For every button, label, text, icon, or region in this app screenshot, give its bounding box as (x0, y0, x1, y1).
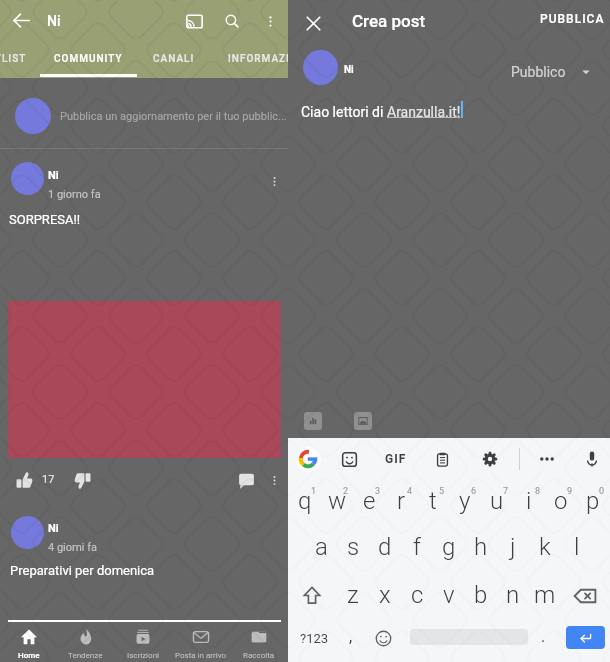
button[interactable]: x (368, 572, 400, 620)
button[interactable]: Raccolta (230, 626, 288, 662)
staticText: SORPRESA!! (9, 212, 81, 227)
staticText: 1 (311, 486, 317, 497)
button[interactable]: Dislike (67, 465, 97, 495)
staticText: 2 (343, 486, 349, 497)
button[interactable]: Voice input (578, 444, 606, 474)
button[interactable]: Shift (288, 574, 336, 618)
button[interactable]: Clipboard (428, 445, 456, 473)
button[interactable]: Close (295, 5, 331, 41)
staticText: Raccolta (243, 651, 275, 660)
button[interactable]: t (416, 478, 448, 526)
button[interactable]: b (464, 572, 496, 620)
button[interactable] (0, 79, 288, 148)
staticText: Aranzulla.it! (387, 104, 461, 120)
staticText: a (315, 533, 328, 561)
staticText: k (539, 533, 551, 561)
button[interactable]: r (384, 478, 416, 526)
button[interactable]: Backspace (561, 574, 609, 618)
button[interactable]: j (496, 524, 528, 572)
staticText: Pubblica un aggiornamento per il tuo pub… (60, 110, 287, 123)
button[interactable]: Settings (476, 445, 504, 473)
button[interactable]: Iscrizioni (114, 626, 172, 662)
button[interactable]: PUBBLICA (533, 5, 610, 33)
staticText: Home (18, 651, 40, 660)
button[interactable]: Image (354, 412, 372, 430)
staticText: CANALI (153, 53, 195, 65)
staticText: j (510, 533, 516, 561)
staticText: h (474, 533, 488, 561)
button[interactable]: More options (252, 3, 288, 39)
staticText: PLAYLIST (0, 53, 27, 65)
button[interactable]: c (400, 572, 432, 620)
button[interactable]: PLAYLIST (0, 44, 40, 74)
staticText: 0 (599, 486, 605, 497)
button[interactable]: Pubblico (503, 58, 601, 86)
staticText: 4 (407, 486, 413, 497)
button[interactable]: GIF (380, 445, 412, 473)
staticText: Crea post (352, 11, 426, 31)
button[interactable]: Tendenze (57, 626, 114, 662)
button[interactable]: u (480, 478, 512, 526)
staticText: e (363, 487, 376, 515)
button[interactable]: e (352, 478, 384, 526)
button[interactable]: . (530, 618, 556, 658)
button[interactable]: w (320, 478, 352, 526)
button[interactable]: More options (259, 166, 289, 196)
button[interactable]: n (496, 572, 528, 620)
staticText: f (413, 533, 421, 561)
button[interactable]: l (560, 524, 592, 572)
button[interactable]: INFORMAZIONI (210, 44, 328, 74)
button[interactable]: o (544, 478, 576, 526)
staticText: 6 (471, 486, 477, 497)
button[interactable]: i (512, 478, 544, 526)
button[interactable]: Google (295, 446, 321, 472)
staticText: q (298, 487, 312, 515)
button[interactable]: , (338, 618, 364, 658)
button[interactable]: Stickers (335, 445, 363, 473)
button[interactable]: Emoji (369, 618, 397, 658)
button[interactable]: z (336, 572, 368, 620)
button[interactable]: s (336, 524, 368, 572)
button[interactable]: g (432, 524, 464, 572)
button[interactable]: Search (214, 3, 250, 39)
staticText: d (378, 533, 392, 561)
button[interactable]: Comments (231, 465, 261, 495)
button[interactable]: Poll (304, 412, 322, 430)
button[interactable]: Posta in arrivo (172, 626, 230, 662)
button[interactable]: Home (0, 626, 57, 662)
button[interactable]: d (368, 524, 400, 572)
button[interactable]: Enter (566, 626, 605, 649)
staticText: 3 (375, 486, 381, 497)
staticText: l (574, 533, 580, 561)
button[interactable]: k (528, 524, 560, 572)
button[interactable]: Like (9, 465, 39, 495)
staticText: c (411, 581, 424, 609)
button[interactable]: h (464, 524, 496, 572)
staticText: Iscrizioni (127, 651, 159, 660)
button[interactable]: v (432, 572, 464, 620)
button[interactable]: COMMUNITY (40, 44, 137, 74)
button[interactable]: CANALI (137, 44, 210, 74)
button[interactable]: y (448, 478, 480, 526)
staticText: ?123 (300, 631, 329, 646)
staticText: b (474, 581, 488, 609)
staticText: w (328, 487, 347, 515)
staticText: t (429, 487, 437, 515)
button[interactable]: Cast (176, 3, 212, 39)
button[interactable]: More options (533, 445, 561, 473)
button[interactable]: Back (3, 2, 40, 39)
button[interactable]: m (528, 572, 560, 620)
button[interactable]: f (400, 524, 432, 572)
staticText: x (379, 581, 391, 609)
button[interactable]: q (288, 478, 320, 526)
staticText: Ni (344, 64, 354, 76)
staticText: Tendenze (68, 651, 103, 660)
button[interactable]: a (304, 524, 336, 572)
button[interactable]: More options (259, 465, 289, 495)
staticText: 4 giorni fa (48, 541, 98, 554)
button[interactable]: p (576, 478, 608, 526)
button[interactable]: ?123 (290, 618, 338, 658)
staticText: r (397, 487, 406, 515)
